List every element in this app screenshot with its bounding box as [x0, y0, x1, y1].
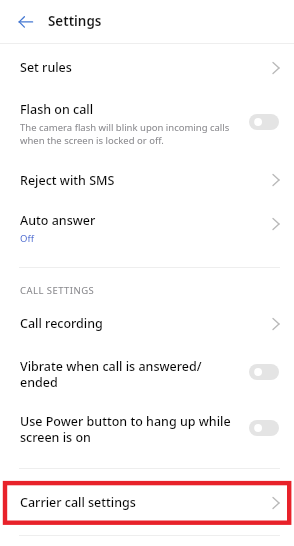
button[interactable]: Reject with SMS — [0, 156, 294, 200]
staticText: Carrier call settings — [20, 494, 136, 511]
button[interactable]: Use Power button to hang up while screen… — [0, 402, 294, 456]
staticText: Flash on call — [20, 101, 94, 118]
staticText: Vibrate when call is answered/ ended — [20, 358, 202, 390]
button[interactable]: Back — [12, 8, 40, 36]
button[interactable]: Auto answer — [0, 202, 294, 250]
staticText: Auto answer — [20, 212, 96, 229]
staticText: Settings — [48, 12, 102, 30]
button[interactable]: Call recording — [0, 304, 294, 346]
button[interactable]: Carrier call settings — [0, 481, 294, 525]
button[interactable]: Set rules — [0, 44, 294, 88]
button[interactable]: Vibrate when call is answered or ended s… — [249, 364, 279, 380]
staticText: The camera flash will blink upon incomin… — [20, 121, 230, 147]
staticText: Off — [20, 232, 34, 245]
staticText: Reject with SMS — [20, 172, 115, 189]
button[interactable]: Flash on call switch — [249, 114, 279, 130]
staticText: Call recording — [20, 315, 103, 332]
button[interactable]: Vibrate when call is answered or ended — [0, 348, 294, 400]
button[interactable]: Flash on call — [0, 90, 294, 152]
staticText: Set rules — [20, 59, 72, 76]
staticText: Use Power button to hang up while screen… — [20, 413, 231, 445]
button[interactable]: Use Power button to hang up switch — [249, 420, 279, 436]
staticText: CALL SETTINGS — [20, 284, 95, 297]
